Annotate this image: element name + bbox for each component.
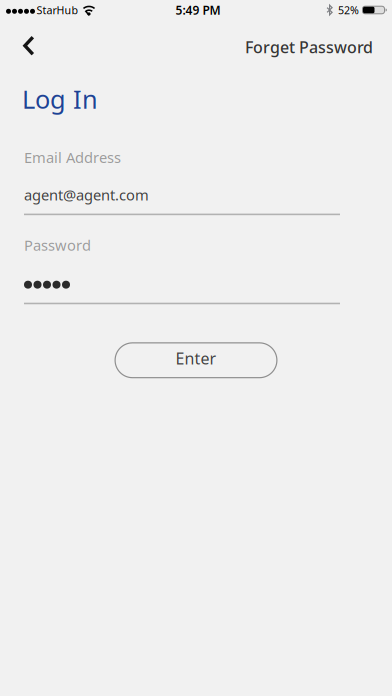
staticText: Forget Password bbox=[245, 36, 373, 58]
staticText: Log In bbox=[22, 82, 98, 116]
staticText: agent@agent.com bbox=[24, 185, 149, 205]
staticText: Enter bbox=[175, 348, 216, 369]
staticText: Password bbox=[24, 235, 91, 255]
button[interactable]: Enter bbox=[114, 342, 277, 378]
staticText: 5:49 PM bbox=[175, 2, 220, 18]
button[interactable]: Back bbox=[0, 20, 48, 70]
button[interactable]: Forget Password bbox=[245, 20, 392, 70]
staticText: Email Address bbox=[24, 148, 121, 167]
staticText: StarHub bbox=[36, 3, 78, 17]
staticText: 52% bbox=[338, 3, 359, 17]
